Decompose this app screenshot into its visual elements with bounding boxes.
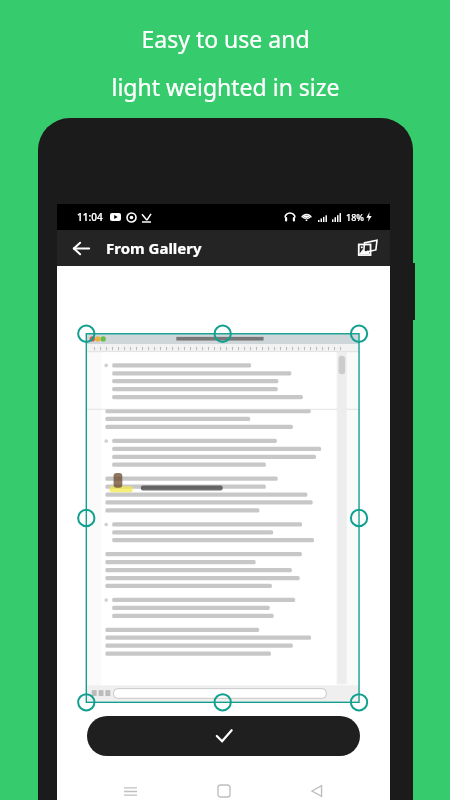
staticText: 11:04 (77, 210, 103, 224)
button[interactable]: Home (204, 774, 244, 800)
button[interactable]: Gallery (352, 233, 382, 263)
staticText: 18% (346, 211, 364, 223)
button[interactable]: Recents (110, 774, 150, 800)
button[interactable]: Back (297, 774, 337, 800)
staticText: From Gallery (106, 238, 202, 258)
button[interactable]: Back (65, 232, 97, 264)
staticText: Easy to use and (141, 23, 310, 54)
button[interactable]: Confirm (87, 716, 360, 756)
staticText: light weighted in size (111, 71, 340, 102)
